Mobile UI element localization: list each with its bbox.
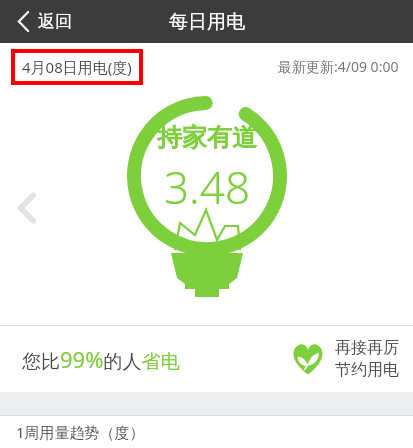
- button[interactable]: Previous day: [16, 191, 38, 225]
- staticText: 您比99%的人省电: [22, 344, 180, 374]
- staticText: 每日用电: [169, 10, 245, 34]
- button[interactable]: 再接再厉: [290, 338, 399, 380]
- staticText: 3.48: [164, 157, 251, 217]
- staticText: 再接再厉: [335, 338, 399, 358]
- staticText: 4月08日用电(度): [22, 57, 132, 77]
- staticText: 最新更新:4/09 0:00: [278, 57, 399, 76]
- button[interactable]: 返回: [0, 5, 86, 38]
- staticText: 持家有道: [157, 122, 257, 153]
- staticText: 节约用电: [335, 360, 399, 380]
- staticText: 返回: [38, 11, 72, 32]
- button[interactable]: 4月08日用电(度): [13, 51, 141, 83]
- staticText: 1周用量趋势（度）: [16, 422, 145, 442]
